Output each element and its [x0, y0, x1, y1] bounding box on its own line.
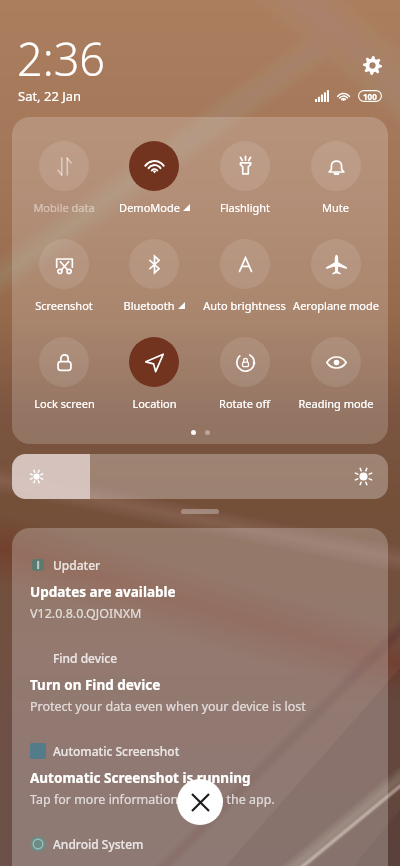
staticText: Updater [53, 557, 101, 573]
button[interactable]: Location [109, 337, 199, 411]
staticText: 2:36 [17, 28, 106, 89]
button[interactable]: Mobile data [19, 141, 109, 215]
staticText: Flashlight [220, 200, 270, 215]
staticText: Updates are available [30, 583, 176, 601]
button[interactable]: Android System [12, 834, 388, 853]
staticText: Automatic Screenshot [53, 743, 180, 759]
staticText: Lock screen [34, 396, 95, 411]
staticText: Reading mode [298, 396, 374, 411]
staticText: Screenshot [35, 298, 93, 313]
staticText: Mobile data [33, 200, 95, 215]
button[interactable]: Brightness [12, 454, 388, 499]
staticText: Sat, 22 Jan [18, 87, 82, 105]
button[interactable]: Bluetooth [109, 239, 199, 313]
button[interactable]: Reading mode [290, 337, 381, 411]
staticText: Find device [53, 650, 118, 666]
staticText: Location [132, 396, 177, 411]
button[interactable]: Automatic Screenshot [12, 741, 388, 808]
button[interactable]: Mute [290, 141, 381, 215]
button[interactable]: Find device [12, 648, 388, 715]
button[interactable]: Clear all notifications [177, 779, 223, 825]
button[interactable]: Rotate off [199, 337, 290, 411]
button[interactable]: Aeroplane mode [290, 239, 381, 313]
button[interactable]: Screenshot [19, 239, 109, 313]
staticText: V12.0.8.0.QJOINXM [30, 605, 142, 622]
staticText: Mute [322, 200, 349, 215]
button[interactable]: Updater [12, 555, 388, 622]
staticText: Rotate off [219, 396, 270, 411]
staticText: Auto brightness [203, 298, 286, 313]
button[interactable]: DemoMode [109, 141, 199, 215]
staticText: Protect your data even when your device … [30, 698, 306, 715]
staticText: 100 [363, 91, 377, 102]
staticText: DemoMode [119, 200, 180, 215]
staticText: Bluetooth [123, 298, 175, 313]
staticText: Turn on Find device [30, 676, 161, 694]
button[interactable]: Flashlight [199, 141, 290, 215]
button[interactable]: Settings [357, 50, 387, 80]
staticText: Automatic Screenshot is running [30, 769, 251, 787]
button[interactable]: Lock screen [19, 337, 109, 411]
staticText: Tap for more information or stop the app… [30, 791, 275, 808]
staticText: Android System [53, 836, 144, 852]
button[interactable]: Auto brightness [199, 239, 290, 313]
staticText: Aeroplane mode [293, 298, 379, 313]
